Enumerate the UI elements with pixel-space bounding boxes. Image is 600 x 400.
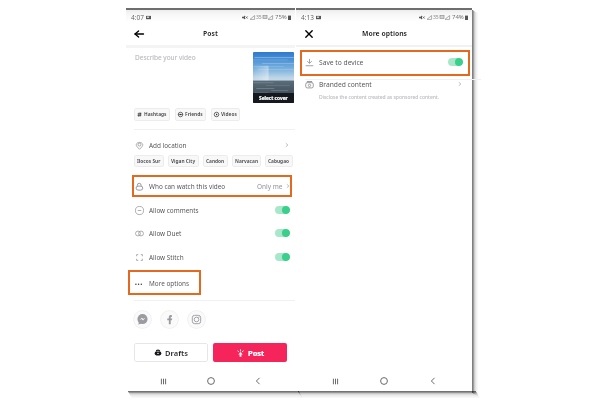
staticText: Branded content [319, 80, 372, 89]
button[interactable]: Narvacan [232, 155, 261, 167]
staticText: Ilocos Sur [137, 158, 161, 165]
button[interactable]: Recent apps [153, 371, 173, 391]
button[interactable]: Branded content [296, 80, 472, 104]
staticText: 75% [275, 13, 287, 21]
button[interactable]: Toggle [275, 229, 290, 237]
staticText: Only me [257, 182, 283, 191]
button[interactable]: Allow Duet [126, 224, 295, 242]
staticText: Disclose the content created as sponsore… [319, 94, 439, 101]
button[interactable]: Vigan City [168, 155, 199, 167]
staticText: Who can watch this video [149, 182, 226, 191]
button[interactable]: Friends [175, 108, 206, 121]
button[interactable]: Back [131, 26, 147, 42]
button[interactable]: Home [374, 371, 394, 391]
button[interactable]: Share to Instagram [187, 310, 206, 329]
button[interactable]: Save to device [296, 53, 472, 71]
button[interactable]: Candon [203, 155, 228, 167]
button[interactable]: Toggle [448, 58, 463, 66]
button[interactable]: More options [126, 274, 295, 292]
button[interactable]: Post [213, 343, 287, 362]
button[interactable]: Recent apps [325, 371, 345, 391]
button[interactable]: Who can watch this video [126, 177, 295, 195]
button[interactable]: Allow comments [126, 201, 295, 219]
button[interactable]: Share to Messenger [133, 310, 152, 329]
button[interactable]: Toggle [275, 206, 290, 214]
staticText: Cabugao [268, 158, 290, 165]
button[interactable]: Toggle [275, 253, 290, 261]
staticText: Narvacan [235, 158, 258, 165]
button[interactable]: Hashtags [134, 108, 170, 121]
staticText: 35 [256, 14, 262, 21]
staticText: 74% [452, 13, 464, 21]
staticText: More options [362, 29, 407, 38]
staticText: Drafts [165, 348, 189, 358]
staticText: 4:13 [301, 13, 314, 22]
staticText: Allow Stitch [149, 253, 184, 262]
staticText: Videos [221, 111, 237, 118]
button[interactable]: Share to Facebook [160, 310, 179, 329]
button[interactable]: Drafts [134, 343, 208, 362]
staticText: Save to device [319, 58, 364, 67]
staticText: Post [203, 29, 218, 38]
staticText: Friends [185, 111, 203, 118]
button[interactable]: Back [423, 371, 443, 391]
button[interactable]: Close [301, 26, 317, 42]
button[interactable]: Allow Stitch [126, 248, 295, 266]
staticText: Candon [206, 158, 225, 165]
button[interactable]: Home [201, 371, 221, 391]
staticText: 35 [433, 14, 439, 21]
button[interactable]: Cabugao [265, 155, 293, 167]
button[interactable]: Select cover [253, 52, 294, 103]
staticText: Describe your video [135, 53, 196, 62]
staticText: Allow Duet [149, 229, 182, 238]
staticText: Select cover [259, 95, 288, 102]
button[interactable]: Ilocos Sur [134, 155, 164, 167]
staticText: Post [248, 348, 265, 358]
staticText: Allow comments [149, 206, 199, 215]
staticText: Vigan City [171, 158, 196, 165]
staticText: Hashtags [144, 111, 167, 118]
button[interactable]: Videos [211, 108, 240, 121]
button[interactable]: Back [248, 371, 268, 391]
staticText: 4:07 [131, 13, 144, 22]
staticText: More options [149, 279, 190, 288]
button[interactable]: Add location [126, 136, 295, 154]
staticText: Add location [149, 141, 187, 150]
